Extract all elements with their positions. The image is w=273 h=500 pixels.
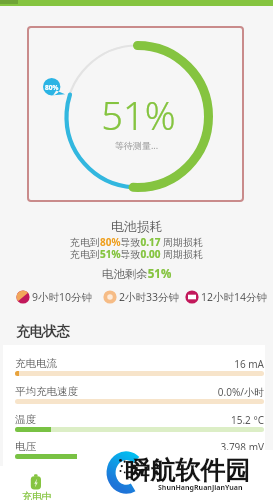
staticText: 充电到80%导致0.17 周期损耗: [0, 235, 273, 249]
button[interactable]: 9小时10分钟: [16, 288, 77, 305]
staticText: 充电电流: [15, 357, 57, 370]
button[interactable]: 电压: [0, 440, 273, 466]
button[interactable]: 充电中: [18, 470, 56, 500]
staticText: 0.0%/小时: [0, 385, 264, 399]
staticText: 12小时14分钟: [201, 290, 268, 304]
button[interactable]: 12小时14分钟: [185, 288, 252, 305]
staticText: 温度: [15, 413, 36, 426]
staticText: 瞬航软件园: [125, 455, 250, 486]
staticText: 充电到51%导致0.00 周期损耗: [0, 247, 273, 261]
staticText: 9小时10分钟: [32, 290, 93, 304]
staticText: 16 mA: [0, 357, 264, 371]
staticText: 80%: [45, 83, 59, 92]
staticText: 51%: [2, 89, 273, 141]
button[interactable]: 平均充电速度: [0, 385, 273, 411]
staticText: 2小时33分钟: [119, 290, 180, 304]
staticText: 充电状态: [16, 323, 70, 340]
staticText: 3,798 mV: [0, 440, 264, 454]
staticText: 充电中: [18, 490, 56, 500]
staticText: 电压: [15, 440, 36, 453]
staticText: 等待测量...: [0, 139, 273, 151]
staticText: ShunHangRuanJianYuan: [158, 483, 243, 493]
staticText: 15.2 °C: [0, 413, 264, 427]
button[interactable]: 温度: [0, 413, 273, 439]
staticText: 电池损耗: [0, 219, 273, 235]
button[interactable]: 充电电流: [0, 357, 273, 383]
staticText: 电池剩余51%: [0, 266, 273, 282]
staticText: 平均充电速度: [15, 385, 78, 398]
button[interactable]: 2小时33分钟: [103, 288, 164, 305]
